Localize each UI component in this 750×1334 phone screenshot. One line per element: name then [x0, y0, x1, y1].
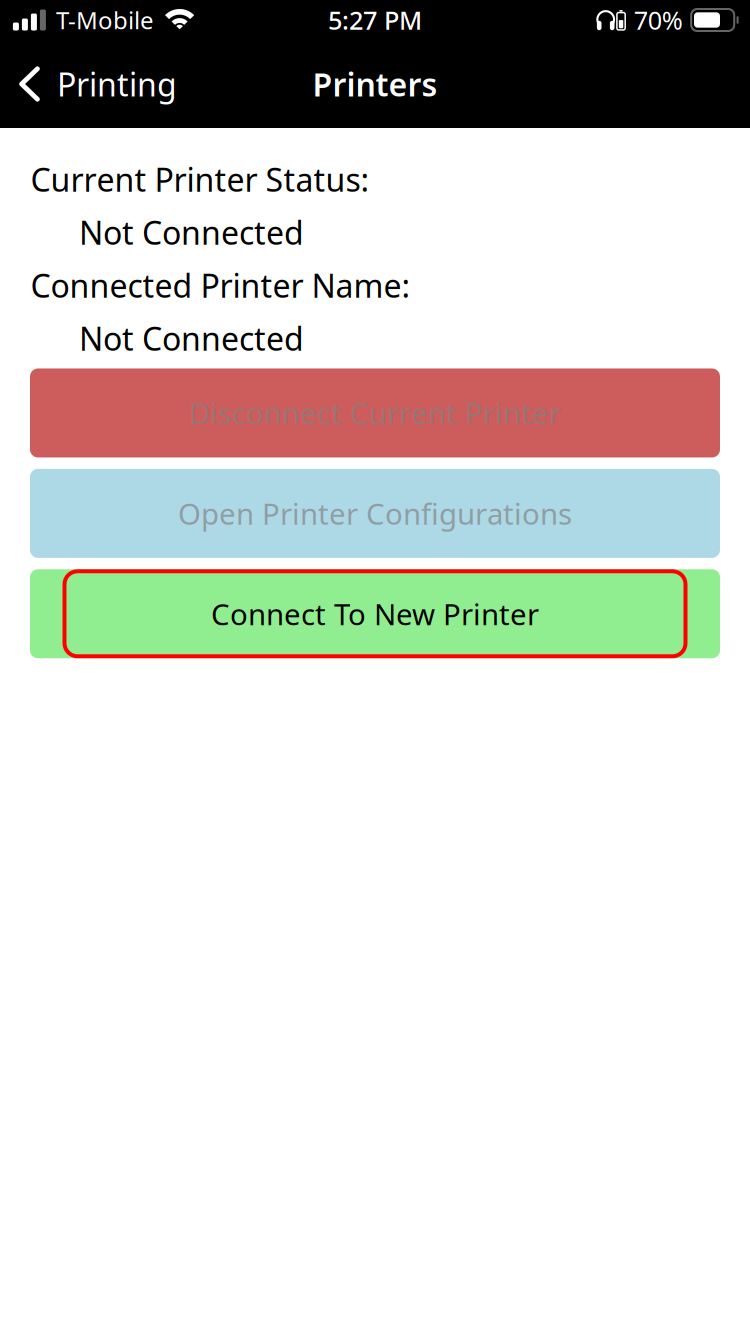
staticText: Printers [312, 63, 437, 105]
staticText: Disconnect Current Printer [189, 393, 561, 432]
staticText: Current Printer Status: [30, 158, 369, 200]
button[interactable]: Open Printer Configurations [30, 469, 720, 558]
staticText: Printing [57, 63, 177, 105]
staticText: Open Printer Configurations [178, 494, 572, 533]
button[interactable]: Connect To New Printer [30, 569, 720, 658]
staticText: 5:27 PM [328, 3, 422, 37]
staticText: Connect To New Printer [211, 594, 539, 633]
staticText: 70% [634, 3, 683, 37]
staticText: Not Connected [79, 317, 304, 359]
staticText: Connected Printer Name: [30, 264, 410, 306]
staticText: T-Mobile [56, 4, 154, 36]
button[interactable]: Disconnect Current Printer [30, 368, 720, 457]
button[interactable]: Printing [0, 40, 189, 128]
staticText: Not Connected [79, 211, 304, 253]
